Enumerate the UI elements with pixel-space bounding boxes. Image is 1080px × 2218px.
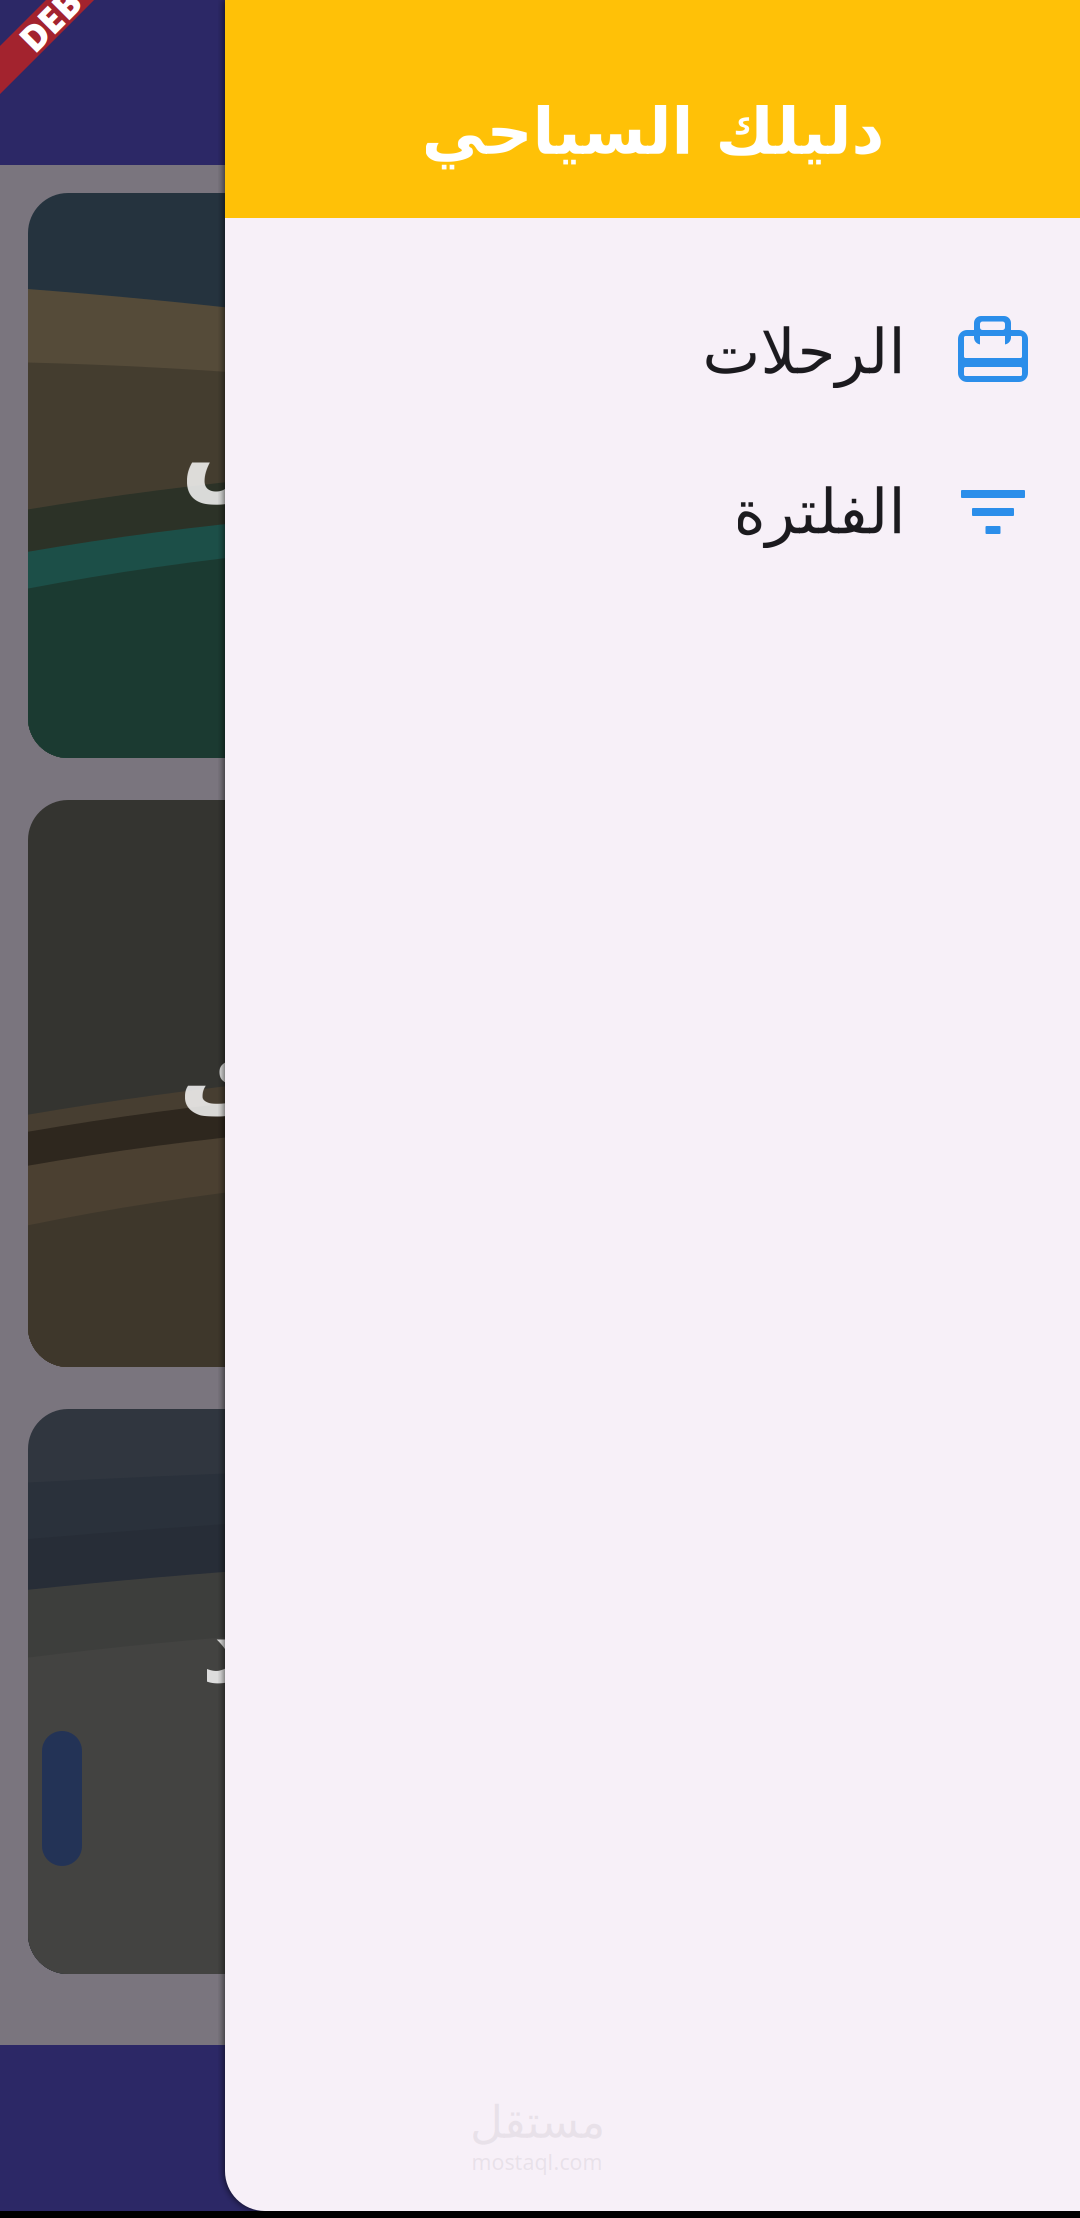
staticText: بحيرة برايس الإيطالية — [180, 388, 807, 618]
staticText: الرحلات — [702, 317, 905, 387]
staticText: التزلج على الجليد — [200, 1589, 1058, 1704]
button[interactable]: التزلج على الجليد — [28, 1409, 1052, 1974]
staticText: mostaql.com — [471, 2148, 602, 2176]
button[interactable]: بحيرة برايس الإيطالية — [28, 193, 1052, 758]
staticText: DEBUG — [21, 11, 145, 59]
staticText: الصحراء الكبرى — [178, 1013, 938, 1128]
button[interactable]: الصحراء الكبرى — [28, 800, 1052, 1367]
staticText: مستقل — [469, 2096, 604, 2148]
button[interactable]: Close menu — [0, 0, 225, 2218]
button[interactable]: الفلترة — [225, 432, 1080, 592]
staticText: دليلك السياحي — [421, 95, 884, 168]
staticText: الفلترة — [733, 477, 905, 547]
button[interactable]: الرحلات — [225, 272, 1080, 432]
